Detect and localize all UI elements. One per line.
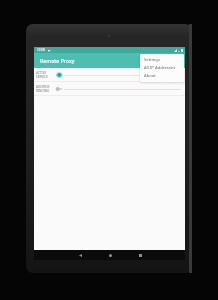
button[interactable]: Home bbox=[103, 250, 117, 260]
button[interactable]: Recent apps bbox=[133, 250, 147, 260]
staticText: ADDRESS bbox=[36, 85, 50, 89]
button[interactable]: ADDRESS bbox=[34, 82, 185, 96]
staticText: Settings bbox=[144, 57, 160, 63]
button[interactable]: Settings bbox=[140, 56, 184, 64]
staticText: SERVICE bbox=[36, 75, 48, 79]
staticText: Remote Proxy bbox=[40, 57, 75, 64]
staticText: About bbox=[144, 73, 156, 79]
staticText: BINDING bbox=[36, 89, 50, 93]
button[interactable]: About bbox=[140, 72, 184, 80]
staticText: ACTIVE bbox=[36, 71, 47, 75]
staticText: All IP Addresses bbox=[144, 65, 176, 71]
button[interactable]: Back bbox=[73, 250, 87, 260]
button[interactable]: ACTIVE bbox=[34, 68, 185, 82]
button[interactable]: All IP Addresses bbox=[140, 64, 184, 72]
button[interactable]: Toggle off bbox=[55, 84, 64, 94]
button[interactable]: More options bbox=[171, 54, 184, 67]
button[interactable]: Toggle on bbox=[55, 70, 64, 80]
staticText: 12:00 bbox=[37, 48, 46, 52]
